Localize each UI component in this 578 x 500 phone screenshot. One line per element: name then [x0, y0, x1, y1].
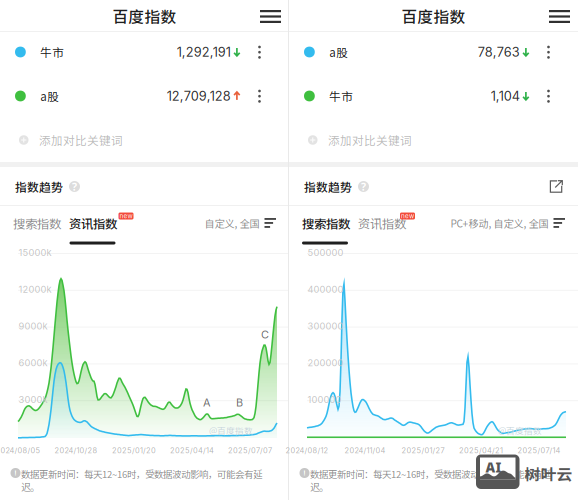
button[interactable]: 牛市 — [0, 30, 289, 74]
staticText: 添加对比关键词 — [39, 132, 123, 148]
staticText: 12,709,128 — [167, 88, 231, 104]
staticText: 迟。 — [310, 480, 328, 494]
staticText: ! — [14, 469, 16, 477]
staticText: 2024/11/04 — [344, 446, 385, 455]
staticText: 百度指数 — [401, 5, 465, 27]
staticText: ? — [72, 179, 77, 194]
button[interactable]: 添加对比关键词 — [289, 118, 578, 162]
staticText: 200000 — [307, 357, 343, 369]
staticText: 100000 — [307, 394, 341, 405]
staticText: 自定义, 全国 — [204, 216, 259, 230]
staticText: 牛市 — [40, 44, 64, 60]
button[interactable]: 搜索指数 — [302, 214, 350, 232]
staticText: 添加对比关键词 — [328, 132, 412, 148]
staticText: 1,104 — [491, 88, 520, 104]
button[interactable]: Menu — [542, 3, 577, 30]
staticText: 1,292,191 — [177, 44, 231, 60]
staticText: 12000k — [18, 284, 51, 295]
staticText: AI — [485, 458, 501, 476]
staticText: 2025/01/20 — [112, 446, 156, 455]
staticText: 百度指数 — [112, 5, 176, 27]
staticText: a股 — [329, 44, 348, 60]
staticText: C — [261, 328, 269, 341]
staticText: A — [203, 396, 211, 409]
staticText: PC+移动, 自定义, 全国 — [450, 216, 548, 230]
button[interactable]: a股 — [0, 74, 289, 118]
staticText: new — [401, 212, 414, 220]
staticText: ? — [361, 179, 366, 194]
staticText: 2025/07/14 — [517, 446, 560, 455]
staticText: 资讯指数 — [358, 214, 406, 232]
staticText: 指数趋势 — [304, 178, 352, 195]
staticText: new — [119, 212, 132, 220]
button[interactable]: 自定义, 全国 — [204, 216, 276, 230]
staticText: 15000k — [18, 247, 51, 258]
staticText: 数据更新时间：每天12~16时，受数据波动影响，可能会有延 — [310, 467, 551, 481]
staticText: 2024/08/05 — [0, 446, 40, 455]
staticText: 迟。 — [21, 480, 39, 494]
button[interactable]: 搜索指数 — [13, 214, 61, 232]
button[interactable]: 牛市 — [289, 74, 578, 118]
staticText: 2025/04/21 — [459, 446, 503, 455]
button[interactable]: PC+移动, 自定义, 全国 — [450, 216, 565, 230]
button[interactable]: Menu — [253, 3, 288, 30]
staticText: 搜索指数 — [13, 214, 61, 232]
staticText: 500000 — [307, 247, 343, 258]
staticText: 数据更新时间：每天12~16时，受数据波动影响，可能会有延 — [21, 467, 262, 481]
button[interactable]: Export — [549, 180, 563, 193]
staticText: a股 — [40, 88, 59, 104]
staticText: 牛市 — [329, 88, 353, 104]
button[interactable]: 添加对比关键词 — [0, 118, 289, 162]
button[interactable]: 资讯指数 — [350, 214, 406, 232]
staticText: 3000k — [18, 394, 47, 405]
staticText: @百度指数 — [209, 424, 253, 437]
staticText: 6000k — [18, 357, 47, 369]
staticText: 78,763 — [478, 44, 520, 60]
staticText: 2024/10/28 — [54, 446, 97, 455]
staticText: 400000 — [307, 284, 343, 295]
staticText: 2024/08/12 — [285, 446, 328, 455]
staticText: 300000 — [307, 320, 343, 332]
staticText: ! — [303, 469, 305, 477]
staticText: 资讯指数 — [69, 214, 117, 232]
staticText: B — [236, 396, 243, 409]
staticText: 9000k — [18, 320, 47, 332]
button[interactable]: 资讯指数 — [61, 214, 117, 232]
staticText: @百度指数 — [498, 424, 542, 437]
staticText: 2025/01/27 — [401, 446, 444, 455]
staticText: 2025/07/07 — [228, 446, 272, 455]
staticText: 指数趋势 — [15, 178, 63, 195]
staticText: 树叶云 — [524, 462, 572, 485]
staticText: 2025/04/14 — [170, 446, 214, 455]
staticText: 搜索指数 — [302, 214, 350, 232]
button[interactable]: a股 — [289, 30, 578, 74]
